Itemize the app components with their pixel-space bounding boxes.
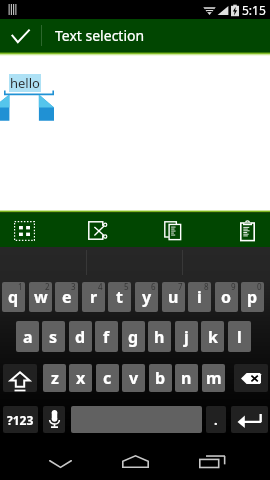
staticText: 1 [18,282,23,292]
staticText: 0 [257,282,262,292]
staticText: b [155,367,166,389]
staticText: g [128,326,139,348]
staticText: h [154,326,165,348]
button[interactable]: s [42,321,65,352]
staticText: u [168,286,179,308]
button[interactable]: c [96,364,119,392]
button[interactable]: v [122,364,145,392]
staticText: p [247,286,258,308]
staticText: c [103,367,112,389]
staticText: t [116,286,123,308]
staticText: a [23,326,33,348]
button[interactable]: l [228,321,251,352]
staticText: z [51,367,59,389]
button[interactable]: Backspace [234,364,268,392]
button[interactable]: Select all [0,214,48,247]
button[interactable]: a [16,321,39,352]
staticText: r [90,286,98,308]
button[interactable]: p [241,282,264,312]
staticText: ?123 [7,412,34,428]
button[interactable]: r [82,282,105,312]
button[interactable]: ?123 [3,406,38,433]
staticText: q [8,286,19,308]
button[interactable]: e [55,282,78,312]
button[interactable]: j [175,321,198,352]
staticText: k [208,326,218,348]
staticText: y [142,286,152,308]
button[interactable]: Paste [210,214,270,247]
button[interactable]: Shift [3,364,37,392]
button[interactable]: q [2,282,25,312]
staticText: d [75,326,86,348]
button[interactable]: Voice input [43,406,65,433]
button[interactable]: Copy [135,214,210,247]
staticText: . [214,411,218,429]
staticText: 6 [151,282,156,292]
staticText: m [206,367,222,389]
staticText: i [197,286,202,308]
button[interactable]: u [162,282,185,312]
button[interactable]: Recents [180,436,244,480]
button[interactable]: Back [28,436,92,480]
button[interactable]: z [43,364,66,392]
staticText: w [34,286,48,308]
button[interactable]: Cut [61,214,135,247]
button[interactable]: d [69,321,92,352]
button[interactable]: x [69,364,92,392]
button[interactable]: k [201,321,224,352]
button[interactable]: f [95,321,118,352]
button[interactable]: Enter [231,406,268,433]
staticText: 8 [204,282,209,292]
staticText: n [181,367,192,389]
staticText: 2 [45,282,50,292]
button[interactable]: y [135,282,158,312]
staticText: 7 [178,282,183,292]
button[interactable]: Done [0,19,41,52]
button[interactable]: b [149,364,172,392]
staticText: j [184,326,189,348]
staticText: s [49,326,58,348]
staticText: 5 [124,282,129,292]
staticText: 4 [98,282,103,292]
staticText: v [129,367,139,389]
staticText: Text selection [55,26,145,45]
button[interactable]: n [175,364,198,392]
staticText: o [221,286,232,308]
staticText: 5:15 [242,2,266,18]
button[interactable]: w [29,282,52,312]
staticText: l [237,326,242,348]
button[interactable]: o [215,282,238,312]
button[interactable]: t [108,282,131,312]
button[interactable]: h [148,321,171,352]
button[interactable]: i [188,282,211,312]
button[interactable]: g [122,321,145,352]
button[interactable]: m [202,364,225,392]
staticText: 9 [231,282,236,292]
staticText: x [76,367,86,389]
button[interactable]: . [206,406,226,433]
staticText: 3 [71,282,76,292]
staticText: f [103,326,110,348]
staticText: e [62,286,72,308]
staticText: hello [10,74,40,92]
button[interactable]: Home [103,436,167,480]
